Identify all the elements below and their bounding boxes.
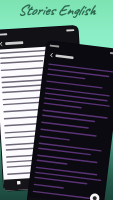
button[interactable]: Compose [92,177,103,188]
staticText: Stories English [18,1,95,20]
